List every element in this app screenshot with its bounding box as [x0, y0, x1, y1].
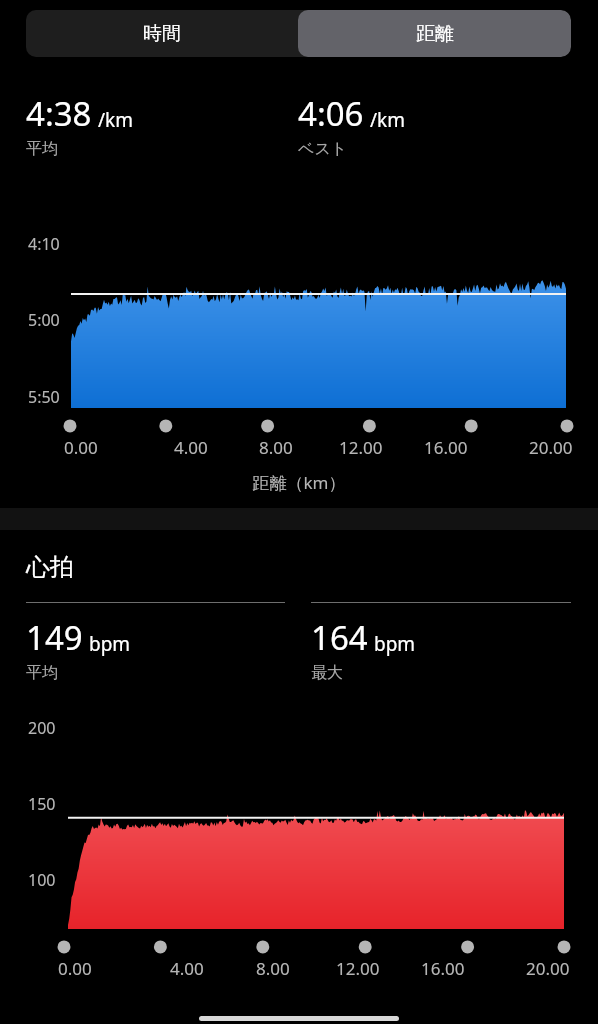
staticText: 12.00 [339, 436, 383, 459]
staticText: /km [370, 107, 405, 133]
staticText: 4:38 [26, 91, 92, 136]
staticText: 0.00 [58, 957, 92, 980]
staticText: 20.00 [526, 957, 570, 980]
staticText: 時間 [143, 22, 181, 46]
staticText: 164 [311, 615, 368, 660]
staticText: 16.00 [424, 436, 468, 459]
staticText: 4.00 [170, 957, 204, 980]
staticText: 8.00 [259, 436, 293, 459]
staticText: 150 [28, 793, 56, 815]
staticText: 16.00 [421, 957, 465, 980]
staticText: 12.00 [336, 957, 380, 980]
staticText: 149 [26, 615, 83, 660]
staticText: bpm [89, 631, 131, 657]
staticText: ベスト [298, 139, 348, 159]
staticText: 5:00 [28, 309, 60, 331]
button[interactable]: 距離 [298, 10, 571, 57]
staticText: 20.00 [529, 436, 573, 459]
staticText: 0.00 [64, 436, 98, 459]
staticText: 8.00 [256, 957, 290, 980]
staticText: 心拍 [26, 552, 74, 582]
staticText: 距離（km） [0, 471, 598, 494]
staticText: 平均 [26, 139, 58, 159]
staticText: 4:10 [28, 233, 60, 255]
staticText: 100 [28, 869, 56, 891]
button[interactable]: 時間 [26, 10, 298, 57]
staticText: 4:06 [298, 91, 364, 136]
staticText: /km [98, 107, 133, 133]
staticText: 200 [28, 717, 56, 739]
staticText: 距離 [416, 22, 454, 46]
staticText: 平均 [26, 663, 58, 683]
staticText: bpm [374, 631, 416, 657]
staticText: 5:50 [28, 386, 60, 408]
staticText: 最大 [311, 663, 343, 683]
staticText: 4.00 [174, 436, 208, 459]
